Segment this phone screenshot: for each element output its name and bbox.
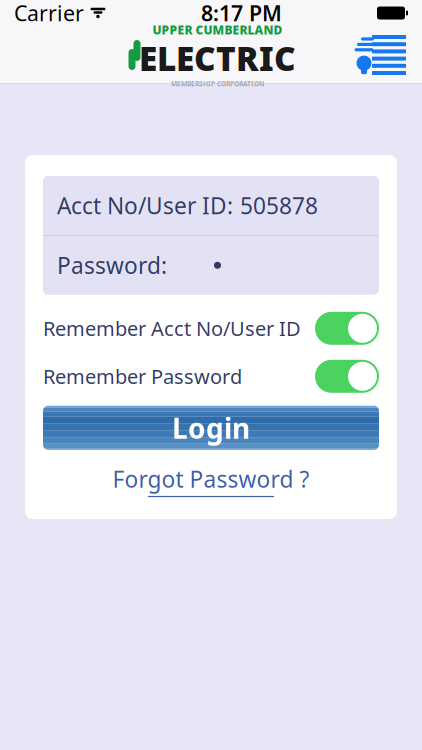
button[interactable]: Acct No/User ID: bbox=[43, 176, 379, 235]
staticText: 8:17 PM bbox=[201, 0, 282, 27]
button[interactable]: Menu bbox=[350, 34, 408, 76]
staticText: Carrier bbox=[14, 0, 84, 27]
staticText: Password: bbox=[57, 250, 167, 280]
button[interactable]: Password: bbox=[43, 236, 379, 295]
button[interactable]: Login bbox=[43, 406, 379, 450]
staticText: 505878 bbox=[240, 190, 318, 220]
staticText: Remember Password bbox=[43, 363, 242, 390]
staticText: MEMBERSHIP CORPORATION bbox=[171, 79, 264, 88]
staticText: Acct No/User ID: bbox=[57, 190, 233, 220]
button[interactable]: Remember Password bbox=[43, 360, 379, 393]
staticText: Login bbox=[172, 409, 250, 446]
button[interactable]: Forgot Password ? bbox=[112, 464, 309, 497]
staticText: Remember Acct No/User ID bbox=[43, 315, 301, 342]
staticText: Forgot Password ? bbox=[112, 464, 309, 494]
staticText: UPPER CUMBERLAND bbox=[152, 22, 282, 38]
button[interactable]: Remember Acct No/User ID bbox=[43, 312, 379, 345]
staticText: ELECTRIC bbox=[139, 36, 296, 80]
